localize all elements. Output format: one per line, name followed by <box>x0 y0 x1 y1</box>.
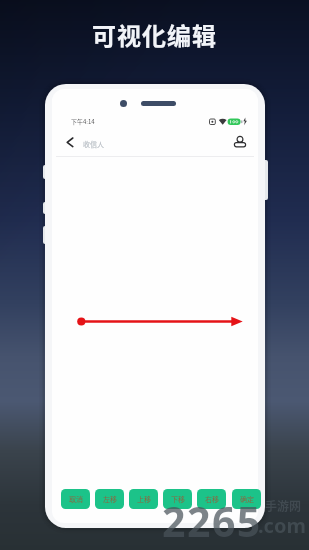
button[interactable]: 上移 <box>129 489 158 509</box>
staticText: 下午4:14 <box>71 117 95 126</box>
staticText: 下移 <box>171 494 185 504</box>
button[interactable] <box>232 134 248 150</box>
button[interactable] <box>63 134 77 150</box>
staticText: .com <box>258 512 306 539</box>
button[interactable]: 下移 <box>163 489 192 509</box>
button[interactable]: 右移 <box>197 489 226 509</box>
button[interactable]: 确定 <box>232 489 261 509</box>
staticText: 上移 <box>137 494 151 504</box>
staticText: 左移 <box>103 494 117 504</box>
staticText: 手游网 <box>265 497 302 514</box>
staticText: 取消 <box>69 494 83 504</box>
staticText: 可视化编辑 <box>92 17 217 52</box>
staticText: 收信人 <box>83 139 104 149</box>
button[interactable] <box>81 134 111 150</box>
button[interactable]: 取消 <box>61 489 90 509</box>
button[interactable]: 左移 <box>95 489 124 509</box>
staticText: 2265 <box>162 493 262 549</box>
staticText: 确定 <box>240 494 254 504</box>
staticText: 右移 <box>205 494 219 504</box>
